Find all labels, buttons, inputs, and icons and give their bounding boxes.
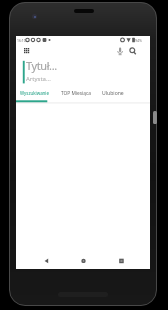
- staticText: Tytuł...: [26, 58, 57, 73]
- staticText: Ulubione: [102, 90, 124, 97]
- staticText: 94%: [135, 38, 143, 43]
- staticText: Artysta...: [26, 75, 51, 83]
- button[interactable]: TOP Miesiąca: [58, 86, 93, 100]
- staticText: TOP Miesiąca: [61, 90, 91, 97]
- button[interactable]: [113, 254, 127, 268]
- button[interactable]: Ulubione: [99, 86, 127, 100]
- button[interactable]: Artysta...: [26, 75, 51, 83]
- staticText: 16:10: [17, 38, 26, 43]
- button[interactable]: [40, 254, 54, 268]
- staticText: Wyszukiwanie: [20, 90, 49, 96]
- button[interactable]: Tytuł...: [26, 57, 57, 73]
- button[interactable]: Wyszukiwanie: [19, 86, 50, 100]
- button[interactable]: [76, 254, 90, 268]
